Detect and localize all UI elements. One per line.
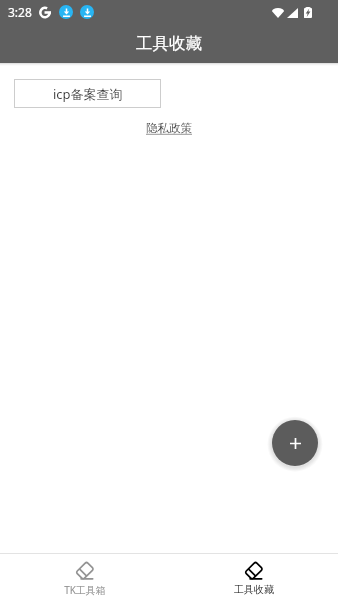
button[interactable]: 工具收藏 <box>169 554 338 601</box>
staticText: 工具收藏 <box>136 33 202 54</box>
button[interactable]: icp备案查询 <box>14 79 161 108</box>
staticText: 工具收藏 <box>234 583 274 596</box>
staticText: 3:28 <box>8 4 32 20</box>
staticText: icp备案查询 <box>53 85 123 103</box>
button[interactable]: 隐私政策 <box>146 121 192 135</box>
staticText: TK工具箱 <box>64 583 106 597</box>
button[interactable]: Add <box>272 420 318 466</box>
button[interactable]: TK工具箱 <box>0 554 169 601</box>
